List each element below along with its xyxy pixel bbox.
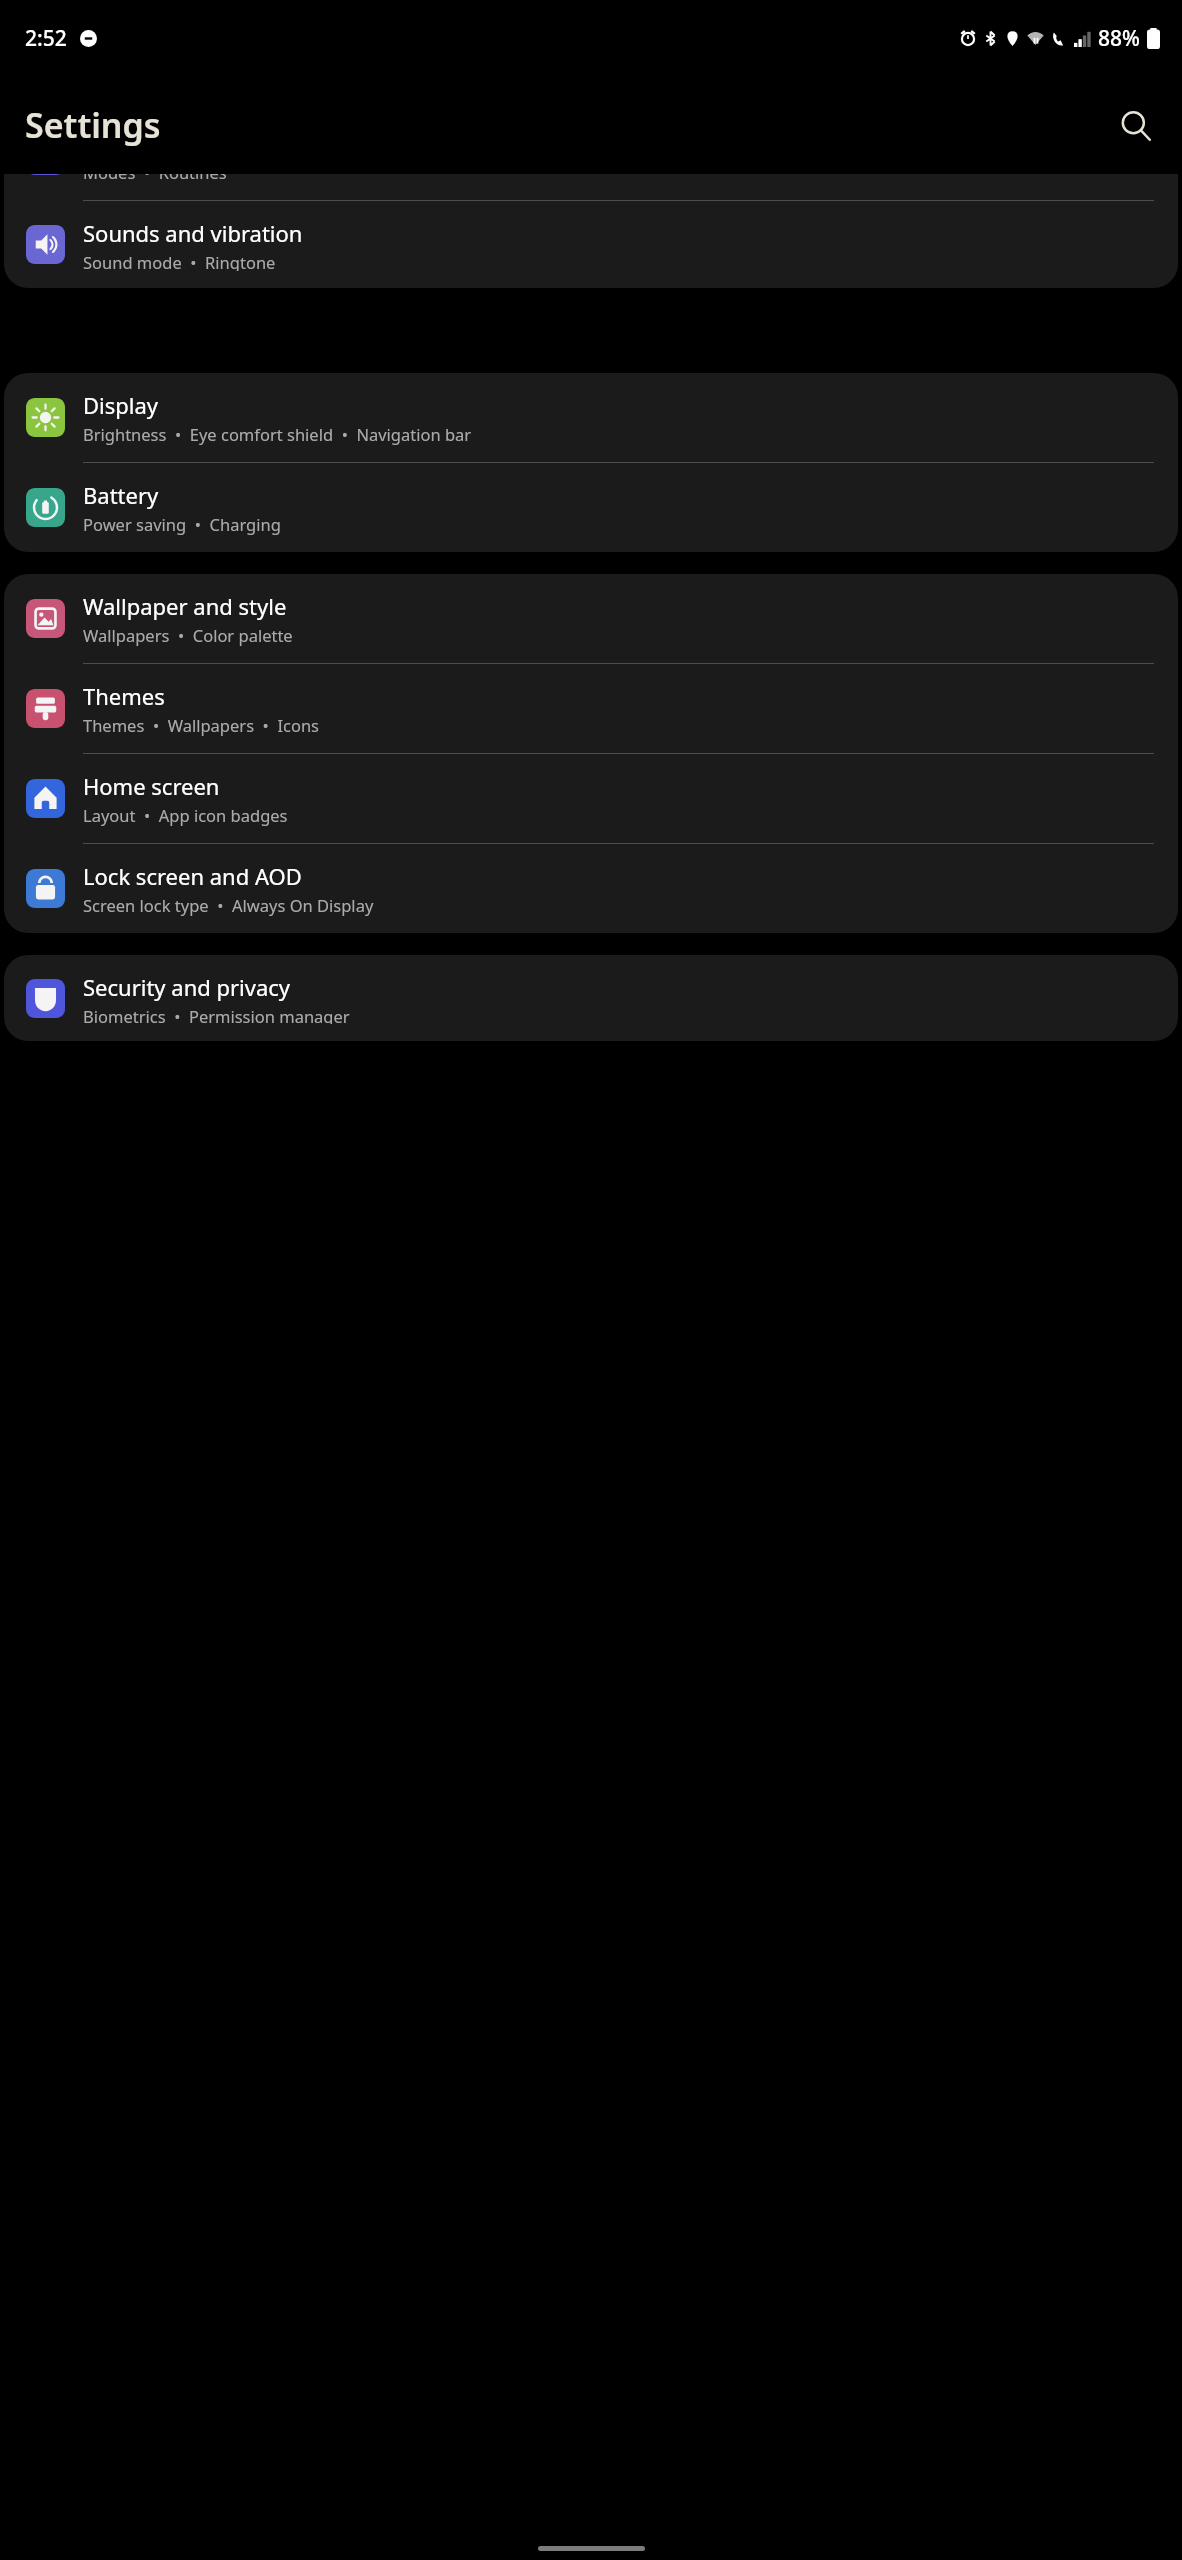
staticText: Sound mode • Ringtone xyxy=(83,251,276,271)
staticText: Wallpaper and style xyxy=(83,591,287,621)
staticText: Lock screen and AOD xyxy=(83,861,302,891)
staticText: Security and privacy xyxy=(83,972,291,1002)
staticText: Biometrics • Permission manager xyxy=(83,1005,350,1024)
staticText: 88% xyxy=(1098,24,1140,53)
staticText: Wallpapers • Color palette xyxy=(83,624,293,646)
button[interactable]: Home screen xyxy=(4,754,1178,843)
button[interactable]: Themes xyxy=(4,664,1178,753)
staticText: Power saving • Charging xyxy=(83,513,281,535)
staticText: Brightness • Eye comfort shield • Naviga… xyxy=(83,423,472,445)
staticText: Display xyxy=(83,390,159,420)
button[interactable]: Display xyxy=(4,373,1178,462)
button[interactable]: Sounds and vibration xyxy=(4,201,1178,288)
button[interactable]: Battery xyxy=(4,463,1178,552)
staticText: Themes • Wallpapers • Icons xyxy=(83,714,319,736)
staticText: Sounds and vibration xyxy=(83,218,303,248)
staticText: Settings xyxy=(25,102,161,148)
staticText: Battery xyxy=(83,480,159,510)
button[interactable]: Search xyxy=(1108,98,1162,152)
staticText: Modes • Routines xyxy=(83,174,227,183)
staticText: 2:52 xyxy=(25,24,67,53)
button[interactable]: Modes and Routines xyxy=(4,174,1178,200)
staticText: Themes xyxy=(83,681,165,711)
staticText: Layout • App icon badges xyxy=(83,804,288,826)
staticText: Screen lock type • Always On Display xyxy=(83,894,374,916)
button[interactable]: Wallpaper and style xyxy=(4,574,1178,663)
staticText: Home screen xyxy=(83,771,220,801)
button[interactable]: Security and privacy xyxy=(4,955,1178,1041)
button[interactable]: Lock screen and AOD xyxy=(4,844,1178,933)
